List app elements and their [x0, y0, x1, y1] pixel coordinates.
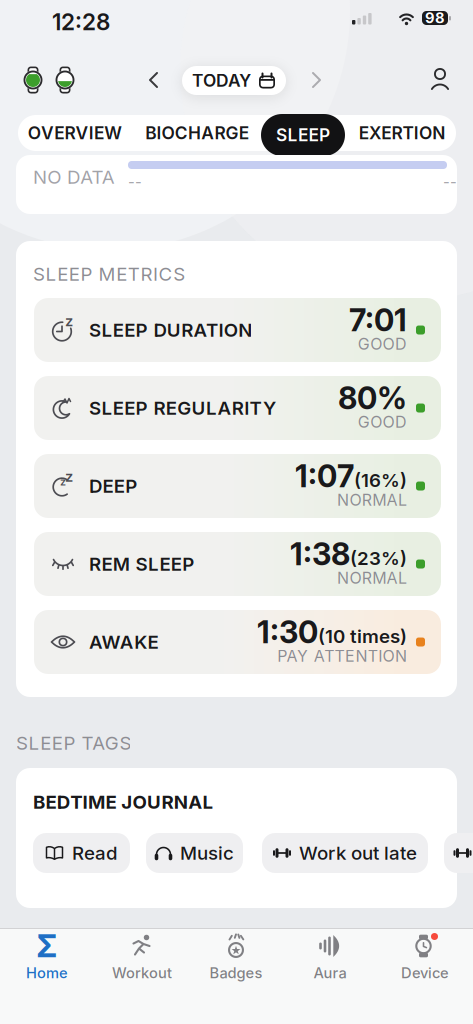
button[interactable]: Watch battery 2 [55, 66, 75, 93]
button[interactable]: Watch battery 1 [23, 66, 43, 93]
button[interactable]: z [34, 298, 441, 362]
button[interactable]: REM SLEEP [34, 532, 441, 596]
staticText: EXERTION [359, 122, 445, 143]
staticText: NORMAL [337, 490, 407, 510]
staticText: DEEP [89, 475, 137, 497]
staticText: (16%) [354, 469, 407, 492]
staticText: SLEEP REGULARITY [89, 397, 276, 419]
button[interactable]: Read [33, 833, 130, 873]
staticText: GOOD [358, 412, 407, 432]
staticText: 7:01 [349, 301, 407, 338]
button[interactable]: EXERTION [350, 115, 454, 151]
button[interactable]: SLEEP REGULARITY [34, 376, 441, 440]
staticText: z [65, 468, 73, 485]
staticText: AWAKE [89, 631, 159, 653]
staticText: NORMAL [337, 568, 407, 588]
button[interactable]: Badges [199, 934, 273, 986]
staticText: 12:28 [52, 8, 110, 36]
staticText: REM SLEEP [89, 553, 194, 575]
staticText: 98 [425, 9, 445, 27]
staticText: z [60, 475, 66, 488]
staticText: SLEEP [276, 124, 330, 145]
staticText: 1:07 [295, 457, 354, 494]
staticText: Device [401, 964, 449, 982]
staticText: Badges [209, 964, 262, 982]
staticText: Home [26, 964, 68, 982]
staticText: GOOD [358, 334, 407, 354]
staticText: SLEEP TAGS [16, 732, 131, 754]
button[interactable]: Workout [105, 934, 179, 986]
staticText: (10 times) [318, 625, 407, 648]
staticText: BEDTIME JOURNAL [33, 791, 214, 813]
staticText: -- [128, 173, 142, 191]
staticText: Music [180, 842, 234, 864]
button[interactable]: z [34, 454, 441, 518]
staticText: Σ [36, 927, 57, 964]
button[interactable]: Music [146, 833, 243, 873]
staticText: NO DATA [33, 166, 115, 188]
button[interactable]: Aura [293, 934, 367, 986]
staticText: BIOCHARGE [145, 122, 249, 143]
staticText: Workout [112, 964, 172, 982]
staticText: OVERVIEW [28, 122, 122, 143]
staticText: 1:30 [257, 613, 318, 650]
button[interactable]: Device [388, 934, 462, 986]
staticText: z [65, 312, 73, 330]
button[interactable]: Σ [10, 934, 84, 986]
staticText: PAY ATTENTION [277, 646, 407, 666]
button[interactable]: Pick date [182, 66, 286, 95]
staticText: SLEEP METRICS [33, 263, 185, 285]
staticText: Read [72, 842, 118, 864]
staticText: 1:38 [290, 535, 350, 572]
staticText: SLEEP DURATION [89, 319, 252, 341]
button[interactable]: Work out late [262, 833, 428, 873]
button[interactable]: Stay up late [444, 833, 473, 873]
button[interactable]: Profile [429, 68, 451, 92]
button[interactable]: SLEEP [261, 114, 345, 156]
staticText: (23%) [350, 547, 407, 570]
staticText: Aura [313, 964, 346, 982]
button[interactable]: BIOCHARGE [138, 115, 256, 151]
button[interactable]: OVERVIEW [21, 115, 129, 151]
staticText: Work out late [299, 842, 417, 864]
staticText: 80% [338, 379, 407, 416]
button[interactable]: Next day [304, 66, 329, 94]
button[interactable]: AWAKE [34, 610, 441, 674]
staticText: TODAY [192, 70, 251, 91]
staticText: -- [443, 173, 457, 191]
button[interactable]: Previous day [141, 66, 166, 94]
